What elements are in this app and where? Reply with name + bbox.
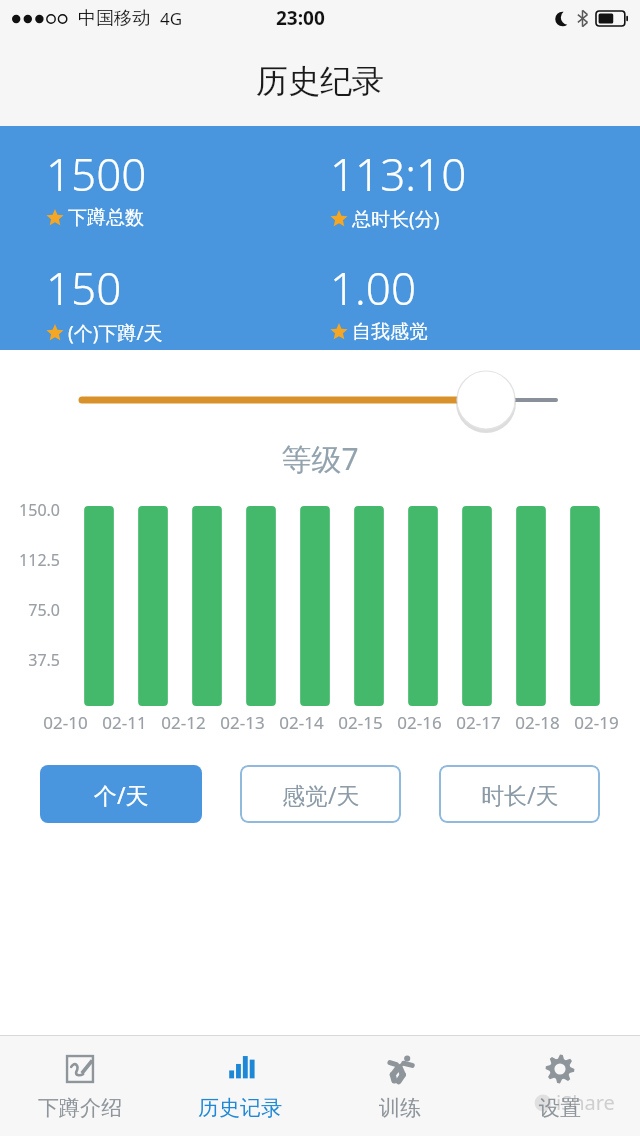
button[interactable]: 感觉/天 (240, 765, 401, 823)
staticText: 总时长(分) (352, 206, 440, 232)
staticText: 等级7 (0, 438, 640, 479)
staticText: 02-10 (36, 711, 95, 734)
button[interactable]: 设置 (480, 1036, 640, 1136)
button[interactable]: 训练 (320, 1036, 480, 1136)
button[interactable]: 个/天 (40, 765, 202, 823)
staticText: 1500 (46, 144, 147, 204)
staticText: 150.0 (8, 499, 60, 521)
button[interactable]: 时长/天 (439, 765, 600, 823)
staticText: 设置 (539, 1095, 581, 1121)
staticText: 02-17 (449, 711, 508, 734)
staticText: 个/天 (94, 779, 149, 810)
staticText: 02-13 (213, 711, 272, 734)
staticText: 02-15 (331, 711, 390, 734)
staticText: 自我感觉 (352, 320, 428, 344)
staticText: 时长/天 (481, 779, 559, 810)
staticText: 中国移动 (78, 7, 150, 30)
button[interactable] (0, 368, 640, 432)
staticText: 75.0 (8, 599, 60, 621)
staticText: 训练 (379, 1095, 421, 1121)
staticText: (个)下蹲/天 (68, 320, 163, 346)
staticText: iShare (556, 1089, 615, 1116)
staticText: 下蹲介绍 (38, 1095, 122, 1121)
staticText: 下蹲总数 (68, 206, 144, 230)
button[interactable]: 下蹲介绍 (0, 1036, 160, 1136)
staticText: 02-18 (508, 711, 567, 734)
staticText: 37.5 (8, 649, 60, 671)
staticText: 150 (46, 258, 122, 318)
staticText: 历史记录 (198, 1095, 282, 1121)
staticText: 02-11 (95, 711, 154, 734)
staticText: 113:10 (330, 144, 467, 204)
staticText: 112.5 (8, 549, 60, 571)
staticText: 23:00 (276, 5, 325, 31)
staticText: 02-19 (567, 711, 626, 734)
staticText: 02-14 (272, 711, 331, 734)
button[interactable]: 历史记录 (160, 1036, 320, 1136)
staticText: 历史纪录 (256, 61, 384, 101)
staticText: 4G (160, 7, 183, 30)
staticText: 02-16 (390, 711, 449, 734)
staticText: 02-12 (154, 711, 213, 734)
staticText: 1.00 (330, 258, 417, 318)
staticText: 感觉/天 (282, 779, 360, 810)
